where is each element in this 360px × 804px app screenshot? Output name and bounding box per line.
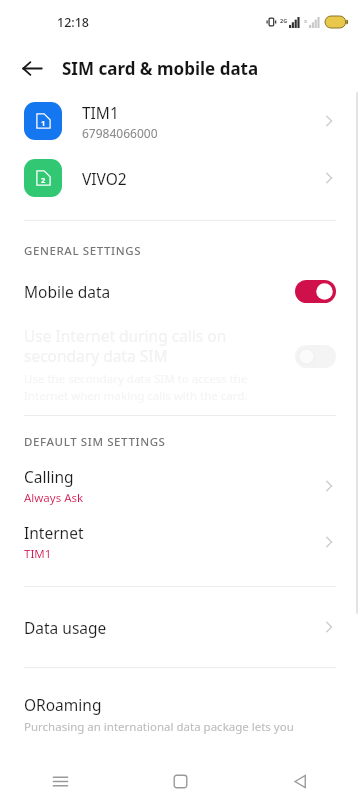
- button[interactable]: 2: [0, 150, 360, 206]
- staticText: Calling: [24, 466, 74, 487]
- button[interactable]: Back: [240, 758, 360, 804]
- staticText: Data usage: [24, 617, 322, 638]
- staticText: x: [304, 17, 308, 24]
- button[interactable]: Mobile data: [0, 267, 360, 315]
- staticText: DEFAULT SIM SETTINGS: [24, 434, 166, 450]
- button[interactable]: Use Internet during calls on secondary d…: [0, 315, 360, 415]
- staticText: GENERAL SETTINGS: [24, 243, 142, 259]
- staticText: Use Internet during calls on secondary d…: [24, 325, 283, 367]
- staticText: VIVO2: [82, 168, 127, 189]
- staticText: SIM card & mobile data: [62, 57, 259, 80]
- staticText: TIM1: [82, 102, 119, 123]
- staticText: TIM1: [24, 546, 52, 562]
- button[interactable]: Internet: [0, 514, 360, 570]
- staticText: ORoaming: [24, 694, 102, 715]
- staticText: Always Ask: [24, 490, 84, 506]
- button[interactable]: Calling: [0, 458, 360, 514]
- staticText: 2G: [280, 17, 288, 24]
- button[interactable]: 1: [0, 92, 360, 150]
- staticText: 67984066000: [82, 125, 158, 141]
- button[interactable]: ORoaming: [0, 668, 360, 735]
- staticText: Internet: [24, 522, 84, 543]
- staticText: 1: [41, 118, 46, 128]
- staticText: 12:18: [57, 14, 90, 31]
- staticText: Mobile data: [24, 281, 295, 302]
- button[interactable]: Data usage: [0, 587, 360, 667]
- staticText: Purchasing an international data package…: [24, 719, 294, 735]
- staticText: 2: [41, 175, 46, 185]
- staticText: Use the secondary data SIM to access the…: [24, 371, 283, 403]
- button[interactable]: Home: [120, 758, 240, 804]
- button[interactable]: Back: [12, 48, 52, 88]
- button[interactable]: Recents: [0, 758, 120, 804]
